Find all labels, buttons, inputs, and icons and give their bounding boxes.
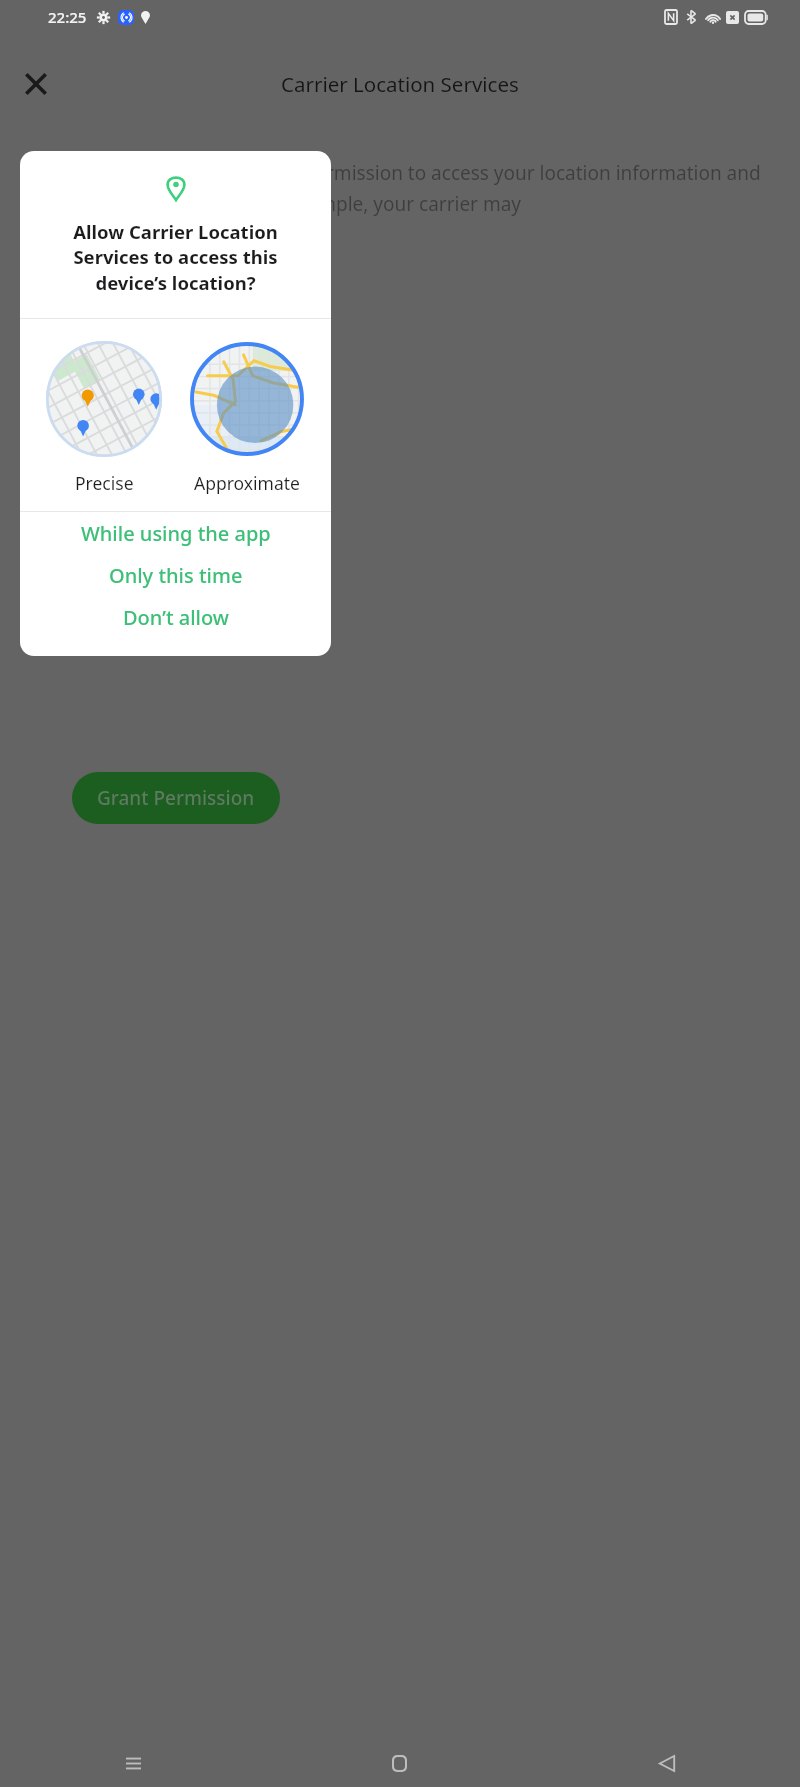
staticText: Approximate [194,471,300,495]
button[interactable]: Home [266,1739,533,1787]
staticText: Carrier Location Services [281,70,519,98]
button[interactable]: Only this time [20,554,331,596]
staticText: 22:25 [48,7,87,27]
staticText: Only this time [109,562,243,589]
staticText: Grant Permission [97,785,255,811]
staticText: Allow Carrier Location Services to acces… [42,219,309,296]
button[interactable]: Close [14,62,58,106]
staticText: While using the app [81,520,271,547]
staticText: Precise [75,471,134,495]
button[interactable]: Back [533,1739,800,1787]
button[interactable]: Precise [46,341,162,495]
button[interactable]: While using the app [20,512,331,554]
button[interactable]: Don’t allow [20,596,331,638]
staticText: Carrier-related services require permiss… [22,160,778,216]
button[interactable]: Grant Permission [72,772,280,824]
staticText: Don’t allow [123,604,229,631]
button[interactable]: Approximate [189,341,305,495]
button[interactable]: Recent apps [0,1739,266,1787]
